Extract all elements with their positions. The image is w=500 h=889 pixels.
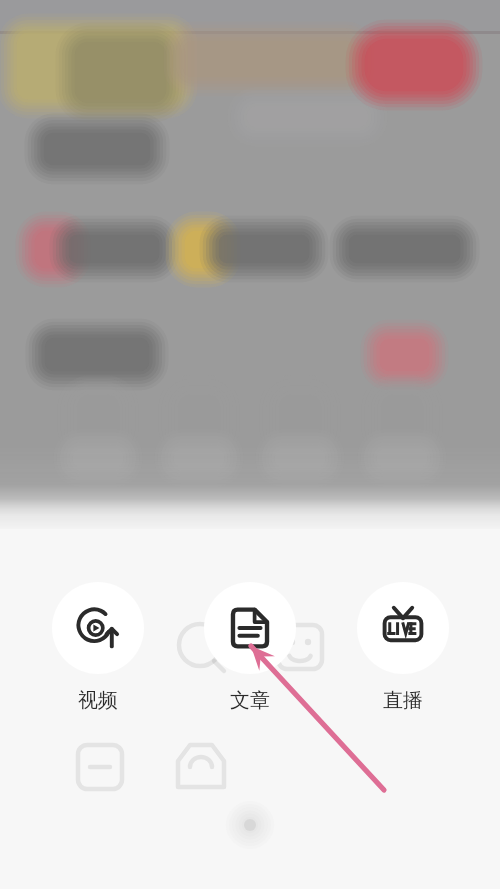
- button[interactable]: Video: [43, 582, 153, 713]
- staticText: 视频: [78, 688, 118, 713]
- button[interactable]: Article: [195, 582, 305, 713]
- staticText: 文章: [230, 688, 270, 713]
- staticText: 直播: [383, 688, 423, 713]
- button[interactable]: Live: [348, 582, 458, 713]
